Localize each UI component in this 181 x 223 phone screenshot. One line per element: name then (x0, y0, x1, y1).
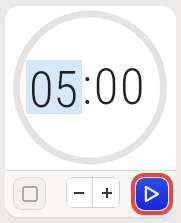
button[interactable] (13, 177, 46, 210)
button[interactable] (136, 178, 168, 210)
staticText: :00 (82, 57, 147, 116)
button[interactable]: 05 (26, 60, 82, 114)
button[interactable] (93, 177, 120, 208)
button[interactable] (66, 177, 92, 208)
staticText: 05 (29, 60, 79, 114)
